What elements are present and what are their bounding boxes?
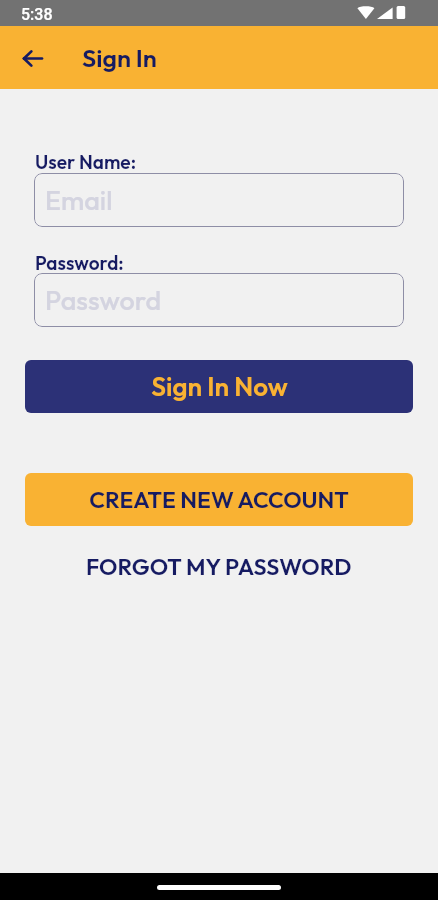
button[interactable]: Back [8,34,56,82]
staticText: Sign In [82,42,157,74]
staticText: 5:38 [21,5,53,24]
button[interactable]: Password [34,273,404,327]
staticText: Email [45,183,113,217]
staticText: Password [45,283,162,317]
button[interactable]: CREATE NEW ACCOUNT [25,473,413,526]
staticText: User Name: [35,150,136,174]
staticText: Sign In Now [151,370,288,403]
button[interactable]: FORGOT MY PASSWORD [0,549,438,583]
button[interactable]: Sign In Now [25,360,413,413]
staticText: CREATE NEW ACCOUNT [89,485,349,514]
button[interactable]: Email [34,173,404,227]
staticText: FORGOT MY PASSWORD [86,552,352,581]
staticText: Password: [35,251,124,275]
